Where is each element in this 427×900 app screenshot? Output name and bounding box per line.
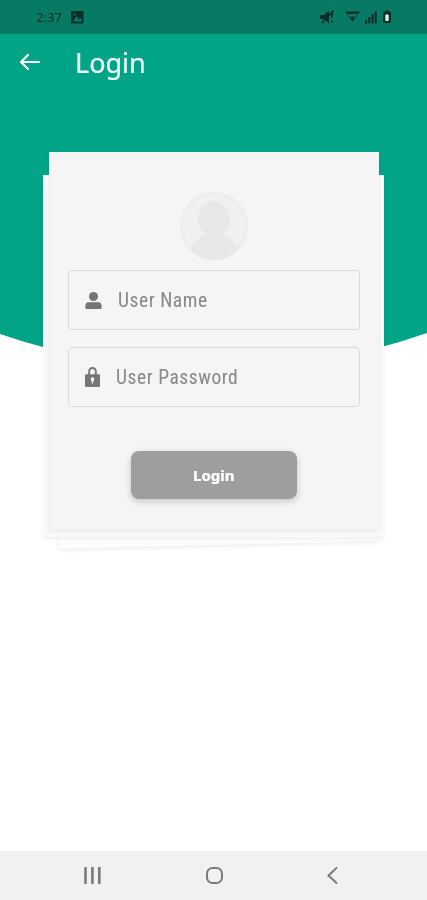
staticText: Login	[75, 44, 146, 81]
staticText: User Password	[116, 366, 239, 389]
button[interactable]: Recent apps	[36, 851, 155, 900]
button[interactable]: Back	[273, 851, 391, 900]
staticText: 2:37	[36, 8, 62, 26]
staticText: User Name	[118, 289, 208, 312]
button[interactable]: Login	[131, 451, 297, 499]
button[interactable]: User Name	[68, 270, 360, 330]
staticText: Login	[193, 465, 235, 485]
button[interactable]: User Password	[68, 347, 360, 407]
button[interactable]: Home	[155, 851, 273, 900]
button[interactable]: Back	[6, 38, 54, 86]
